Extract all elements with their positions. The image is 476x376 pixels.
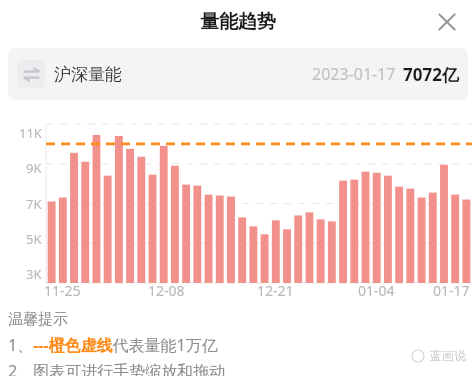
staticText: 3K — [26, 265, 42, 283]
staticText: 蓝画说 — [430, 348, 466, 363]
button[interactable]: Close — [430, 5, 464, 39]
staticText: 7K — [26, 195, 42, 213]
staticText: 01-17 — [433, 281, 470, 300]
staticText: 7072亿 — [403, 63, 459, 86]
staticText: 11K — [19, 124, 42, 142]
staticText: 9K — [26, 159, 42, 177]
staticText: 12-08 — [148, 281, 185, 300]
staticText: 11-25 — [44, 281, 81, 300]
button[interactable]: 沪深量能 — [8, 48, 468, 100]
staticText: 2、图表可进行手势缩放和拖动 — [8, 360, 226, 376]
staticText: 12-21 — [257, 281, 294, 300]
staticText: 1、---橙色虚线代表量能1万亿 — [8, 334, 218, 356]
staticText: 量能趋势 — [200, 10, 276, 34]
staticText: 沪深量能 — [54, 64, 122, 85]
staticText: 温馨提示 — [8, 310, 68, 329]
staticText: 5K — [26, 230, 42, 248]
staticText: 01-04 — [358, 281, 395, 300]
staticText: 2023-01-17 — [312, 63, 396, 85]
